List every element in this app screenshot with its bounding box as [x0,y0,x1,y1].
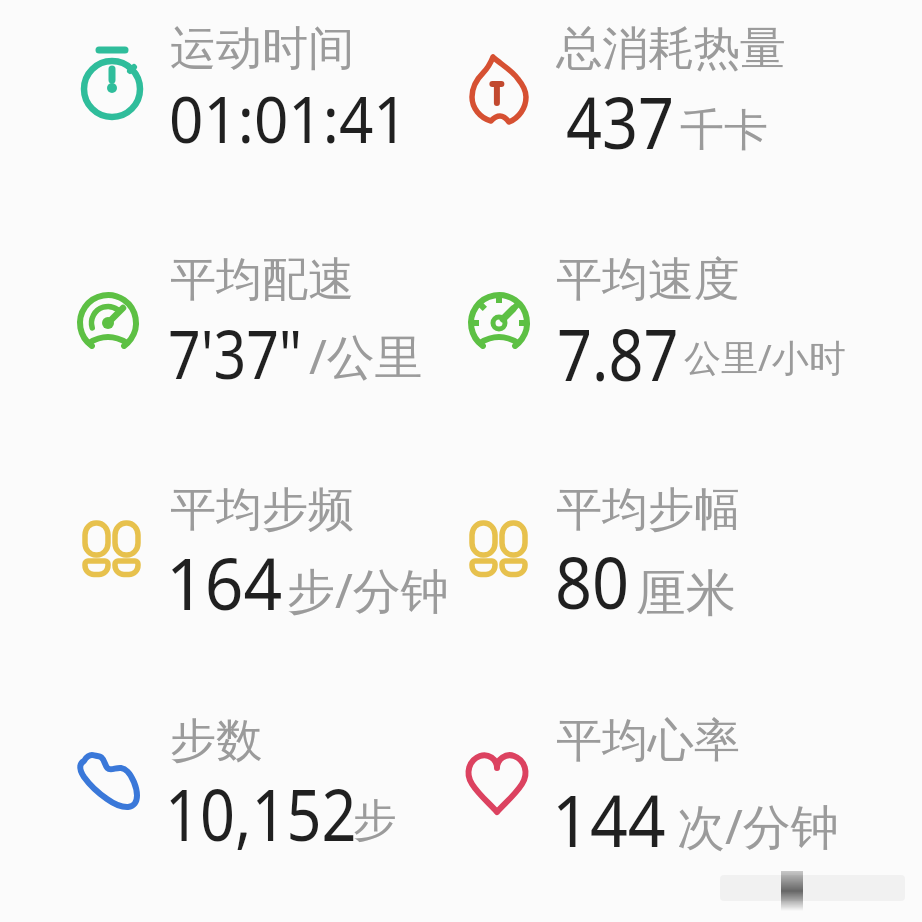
staticText: 平均步幅 [556,481,740,539]
staticText: 平均步频 [170,481,354,539]
staticText: 437 [566,72,674,170]
staticText: 80 [555,532,630,630]
staticText: 平均速度 [556,251,740,309]
staticText: 公里/小时 [684,331,846,382]
staticText: 厘米 [636,562,736,625]
staticText: 步数 [170,712,262,770]
staticText: 运动时间 [170,20,354,78]
staticText: 7'37" [168,306,302,399]
staticText: 10,152 [165,764,357,862]
staticText: 144 [552,770,666,868]
staticText: 平均配速 [170,251,354,309]
staticText: 总消耗热量 [556,20,786,78]
staticText: 7.87 [557,304,678,402]
staticText: 次/分钟 [677,793,839,859]
staticText: 164 [166,533,283,631]
staticText: 步 [353,793,397,848]
staticText: 步/分钟 [287,557,449,623]
staticText: 01:01:41 [169,75,408,162]
staticText: /公里 [309,323,423,389]
staticText: 千卡 [680,103,768,158]
staticText: 平均心率 [556,712,740,770]
